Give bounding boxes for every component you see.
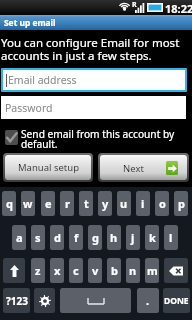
button[interactable]: s <box>31 225 45 250</box>
staticText: x <box>54 263 61 278</box>
button[interactable]: y <box>98 191 112 216</box>
button[interactable]: d <box>50 225 64 250</box>
button[interactable]: p <box>174 191 188 216</box>
staticText: Next <box>123 162 144 175</box>
staticText: o <box>159 196 166 211</box>
staticText: b <box>111 263 118 278</box>
button[interactable]: Space <box>60 288 131 313</box>
staticText: j <box>131 230 135 245</box>
button[interactable]: f <box>69 225 83 250</box>
button[interactable]: Shift <box>3 258 25 283</box>
button[interactable]: w <box>21 191 35 216</box>
staticText: v <box>92 263 99 278</box>
button[interactable]: j <box>126 225 140 250</box>
button[interactable]: x <box>50 258 64 283</box>
staticText: d <box>54 230 61 245</box>
staticText: ?123 <box>6 294 28 308</box>
staticText: i <box>141 196 145 211</box>
staticText: k <box>149 230 156 245</box>
button[interactable]: Settings <box>34 288 55 313</box>
staticText: r <box>65 196 70 211</box>
staticText: n <box>129 263 137 278</box>
button[interactable]: Backspace <box>164 258 188 283</box>
button[interactable]: e <box>41 191 55 216</box>
staticText: m <box>147 263 158 278</box>
button[interactable]: Password <box>1 96 186 119</box>
staticText: c <box>73 263 79 278</box>
button[interactable]: a <box>12 225 26 250</box>
staticText: 18:22 <box>165 1 192 16</box>
button[interactable]: Manual setup <box>5 155 91 180</box>
staticText: Set up email <box>4 17 56 28</box>
button[interactable]: b <box>107 258 121 283</box>
button[interactable]: . <box>137 288 159 313</box>
staticText: l <box>169 230 173 245</box>
button[interactable]: l <box>164 225 178 250</box>
button[interactable]: m <box>145 258 159 283</box>
button[interactable]: Done <box>163 288 190 313</box>
button[interactable]: c <box>69 258 83 283</box>
staticText: Manual setup <box>18 161 79 174</box>
staticText: s <box>35 230 41 245</box>
button[interactable]: r <box>60 191 74 216</box>
staticText: y <box>102 196 109 211</box>
button[interactable]: Send email from this account by default. <box>4 127 188 151</box>
button[interactable]: Symbols <box>3 288 30 313</box>
button[interactable]: g <box>88 225 102 250</box>
staticText: Send email from this account by default. <box>21 127 188 151</box>
staticText: q <box>6 196 13 211</box>
button[interactable]: t <box>79 191 93 216</box>
button[interactable]: o <box>155 191 169 216</box>
staticText: p <box>178 196 185 211</box>
staticText: . <box>146 293 150 308</box>
button[interactable]: z <box>31 258 45 283</box>
staticText: Email address <box>8 73 77 87</box>
button[interactable]: h <box>107 225 121 250</box>
button[interactable]: k <box>145 225 159 250</box>
button[interactable]: q <box>2 191 16 216</box>
staticText: DONE <box>164 295 189 307</box>
button[interactable]: Next <box>100 155 187 180</box>
button[interactable]: v <box>88 258 102 283</box>
staticText: R <box>132 0 137 10</box>
button[interactable]: i <box>136 191 150 216</box>
button[interactable]: n <box>126 258 140 283</box>
button[interactable]: Email address <box>3 70 185 90</box>
button[interactable]: u <box>117 191 131 216</box>
staticText: h <box>110 230 118 245</box>
staticText: a <box>16 230 23 245</box>
staticText: z <box>35 263 41 278</box>
staticText: e <box>45 196 52 211</box>
staticText: You can configure Email for most account… <box>1 35 189 63</box>
staticText: Password <box>5 101 53 115</box>
staticText: u <box>120 196 128 211</box>
staticText: g <box>92 230 99 245</box>
staticText: f <box>74 230 79 245</box>
staticText: w <box>23 196 33 211</box>
staticText: t <box>84 196 89 211</box>
